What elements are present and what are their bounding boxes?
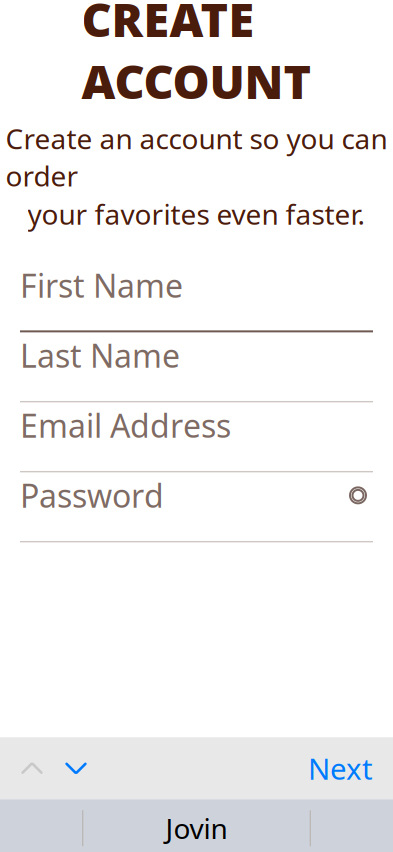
button[interactable]: Next: [298, 746, 383, 790]
staticText: Last Name: [20, 334, 180, 377]
staticText: CREATE ACCOUNT: [81, 0, 311, 112]
staticText: your favorites even faster.: [27, 195, 365, 232]
button[interactable]: Password: [20, 472, 373, 542]
button[interactable]: Previous field: [10, 746, 54, 790]
staticText: Jovin: [165, 810, 227, 847]
button[interactable]: Last Name: [20, 332, 373, 402]
button[interactable]: Next field: [54, 746, 98, 790]
button[interactable]: Email Address: [20, 402, 373, 472]
staticText: Next: [308, 749, 373, 788]
button[interactable]: First Name: [20, 262, 373, 332]
staticText: Create an account so you can order: [5, 120, 387, 194]
staticText: First Name: [20, 264, 183, 307]
staticText: Password: [20, 474, 164, 517]
staticText: Email Address: [20, 404, 231, 447]
